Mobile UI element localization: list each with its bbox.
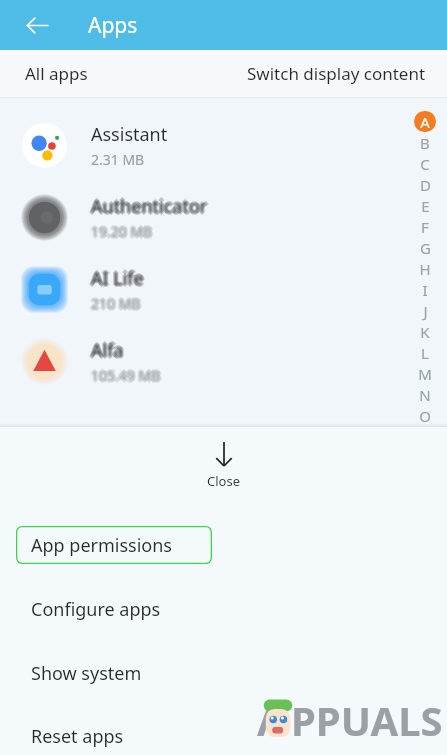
staticText: Alfa (91, 338, 124, 363)
staticText: Authenticator (90, 193, 207, 218)
staticText: 105.49 MB (91, 364, 161, 383)
staticText: 105.49 MB (91, 366, 161, 385)
staticText: 210 MB (91, 292, 141, 311)
staticText: AI Life (92, 265, 145, 290)
staticText: I (422, 280, 428, 300)
button[interactable]: Alphabet index (410, 111, 440, 447)
staticText: Alfa (92, 337, 125, 362)
button[interactable]: Authenticator (0, 181, 447, 253)
staticText: 210 MB (91, 294, 141, 313)
staticText: 105.49 MB (90, 367, 160, 386)
staticText: AI Life (89, 266, 142, 291)
staticText: 19.20 MB (91, 220, 153, 239)
staticText: Alfa (89, 338, 122, 363)
staticText: 19.20 MB (91, 224, 153, 243)
staticText: 19.20 MB (90, 223, 152, 242)
staticText: AI Life (91, 266, 144, 291)
button[interactable]: Assistant (0, 109, 447, 181)
staticText: J (423, 301, 428, 321)
staticText: App permissions (31, 533, 172, 558)
staticText: Alfa (91, 340, 124, 365)
staticText: Alfa (92, 339, 125, 364)
staticText: Alfa (90, 339, 123, 364)
staticText: Authenticator (91, 192, 208, 217)
staticText: Authenticator (89, 194, 206, 219)
staticText: 210 MB (92, 295, 142, 314)
staticText: 105.49 MB (89, 366, 159, 385)
staticText: Assistant (91, 122, 168, 147)
staticText: Authenticator (91, 194, 208, 219)
staticText: 210 MB (90, 293, 140, 312)
staticText: 19.20 MB (90, 221, 152, 240)
button[interactable]: Switch display content (237, 50, 447, 97)
staticText: 19.20 MB (93, 222, 155, 241)
staticText: 2.31 MB (91, 150, 145, 169)
staticText: AI Life (91, 268, 144, 293)
staticText: L (421, 343, 429, 363)
staticText: 105.49 MB (90, 365, 160, 384)
staticText: Show system (31, 661, 142, 686)
staticText: AI Life (93, 266, 146, 291)
staticText: 105.49 MB (92, 365, 162, 384)
staticText: 105.49 MB (91, 368, 161, 387)
staticText: Configure apps (31, 597, 161, 622)
staticText: Alfa (91, 336, 124, 361)
staticText: C (420, 154, 430, 174)
button[interactable]: Show system (0, 654, 447, 692)
staticText: F (421, 217, 429, 237)
button[interactable]: Back (15, 3, 59, 47)
staticText: K (420, 322, 430, 342)
button[interactable]: App permissions (16, 526, 212, 564)
staticText: Authenticator (93, 194, 210, 219)
staticText: D (420, 175, 431, 195)
staticText: A (257, 693, 285, 747)
staticText: M (418, 364, 432, 384)
button[interactable]: All apps (0, 50, 210, 97)
staticText: 19.20 MB (91, 222, 153, 241)
staticText: A (420, 112, 430, 132)
button[interactable]: Configure apps (0, 590, 447, 628)
staticText: 210 MB (90, 295, 140, 314)
staticText: B (420, 133, 430, 153)
staticText: Switch display content (247, 62, 426, 85)
staticText: AI Life (91, 264, 144, 289)
staticText: 210 MB (91, 296, 141, 315)
button[interactable]: Alfa (0, 325, 447, 397)
staticText: Authenticator (92, 193, 209, 218)
staticText: H (419, 259, 431, 279)
staticText: Authenticator (90, 195, 207, 220)
staticText: 105.49 MB (92, 367, 162, 386)
staticText: Alfa (90, 337, 123, 362)
button[interactable]: Reset apps (0, 718, 447, 755)
staticText: Reset apps (31, 724, 124, 749)
staticText: Authenticator (91, 196, 208, 221)
staticText: Alfa (93, 338, 126, 363)
staticText: Authenticator (92, 195, 209, 220)
staticText: O (419, 406, 431, 426)
staticText: 19.20 MB (92, 221, 154, 240)
staticText: PPUALS (291, 693, 443, 747)
staticText: E (421, 196, 430, 216)
staticText: 210 MB (92, 293, 142, 312)
staticText: Apps (88, 11, 138, 40)
button[interactable]: Close (207, 442, 240, 490)
button[interactable]: AI Life (0, 253, 447, 325)
staticText: 210 MB (89, 294, 139, 313)
staticText: G (420, 238, 431, 258)
staticText: 210 MB (93, 294, 143, 313)
staticText: AI Life (90, 267, 143, 292)
staticText: 19.20 MB (92, 223, 154, 242)
staticText: 19.20 MB (89, 222, 151, 241)
staticText: 105.49 MB (93, 366, 163, 385)
staticText: AI Life (92, 267, 145, 292)
staticText: AI Life (90, 265, 143, 290)
staticText: Close (207, 472, 240, 490)
staticText: All apps (25, 62, 88, 85)
staticText: N (419, 385, 431, 405)
